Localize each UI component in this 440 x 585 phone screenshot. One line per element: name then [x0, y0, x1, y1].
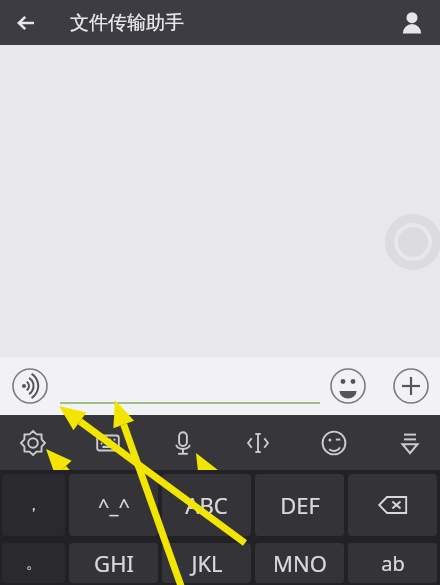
button[interactable]: Emoji — [330, 368, 366, 404]
staticText: ^_^ — [98, 492, 130, 519]
button[interactable]: Contact — [384, 0, 440, 45]
button[interactable] — [58, 366, 322, 406]
button[interactable]: Voice input — [12, 368, 48, 404]
button[interactable]: Emoji — [303, 415, 365, 470]
button[interactable]: Backspace — [348, 474, 437, 536]
button[interactable]: ， — [2, 474, 65, 536]
button[interactable]: Move cursor — [227, 415, 289, 470]
staticText: ABC — [185, 490, 228, 520]
button[interactable]: ^_^ — [69, 474, 158, 536]
button[interactable]: DEF — [255, 474, 344, 536]
button[interactable]: GHI — [69, 543, 158, 583]
button[interactable]: Hide keyboard — [379, 415, 440, 470]
button[interactable]: 。 — [2, 543, 65, 583]
button[interactable]: Keyboard layout — [77, 415, 139, 470]
staticText: DEF — [280, 490, 320, 520]
staticText: 。 — [26, 554, 41, 573]
staticText: JKL — [191, 548, 223, 578]
button[interactable]: More — [393, 368, 429, 404]
staticText: ab — [381, 550, 405, 577]
button[interactable]: ABC — [162, 474, 251, 536]
button[interactable]: Back — [0, 0, 54, 45]
staticText: 文件传输助手 — [70, 11, 184, 35]
staticText: ， — [26, 496, 41, 515]
staticText: GHI — [94, 548, 134, 578]
button[interactable]: Voice — [152, 415, 214, 470]
staticText: MNO — [273, 548, 327, 578]
button[interactable]: JKL — [162, 543, 251, 583]
button[interactable]: Settings — [2, 415, 64, 470]
button[interactable]: ab — [348, 543, 437, 583]
button[interactable]: MNO — [255, 543, 344, 583]
